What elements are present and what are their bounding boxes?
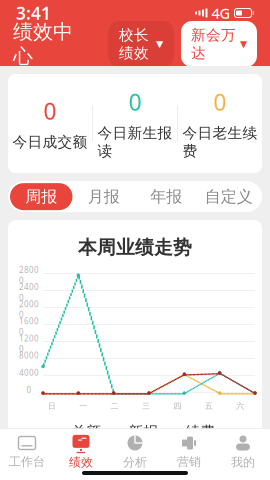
staticText: 今日新生报读 xyxy=(97,124,172,160)
staticText: 3:41 xyxy=(16,1,51,24)
staticText: ▼ xyxy=(240,39,247,49)
button[interactable]: 年报 xyxy=(135,183,197,210)
staticText: 8000 xyxy=(19,350,39,361)
button[interactable]: 月报 xyxy=(72,183,135,210)
staticText: 绩效 xyxy=(69,455,93,470)
staticText: 月报 xyxy=(88,187,120,206)
staticText: 总额 xyxy=(71,423,101,441)
staticText: 12000 xyxy=(19,333,39,354)
button[interactable]: 我的 xyxy=(216,435,270,470)
staticText: 24000 xyxy=(19,282,39,303)
staticText: 4G xyxy=(211,3,230,23)
staticText: 今日成交额 xyxy=(12,133,87,151)
staticText: 四 xyxy=(173,401,181,411)
staticText: 28000 xyxy=(19,264,39,286)
staticText: 我的 xyxy=(231,455,255,470)
staticText: 今日老生续费 xyxy=(182,124,257,160)
staticText: 本周业绩走势 xyxy=(78,236,192,259)
button[interactable]: 自定义 xyxy=(197,183,260,210)
button[interactable]: 工作台 xyxy=(0,435,54,469)
staticText: 年报 xyxy=(150,187,182,206)
staticText: 日 xyxy=(48,401,56,411)
button[interactable]: 营销 xyxy=(162,435,216,469)
button[interactable]: 周报 xyxy=(10,183,72,210)
staticText: 周报 xyxy=(25,187,57,206)
staticText: 0 xyxy=(213,87,226,117)
staticText: 分析 xyxy=(123,455,147,470)
staticText: 一 xyxy=(79,401,87,411)
staticText: 二 xyxy=(111,401,119,411)
staticText: 工作台 xyxy=(9,454,45,469)
staticText: 16000 xyxy=(19,316,39,337)
staticText: 0 xyxy=(128,87,141,117)
staticText: 营销 xyxy=(177,454,201,469)
staticText: 自定义 xyxy=(205,187,253,206)
staticText: 4000 xyxy=(19,367,39,378)
staticText: 0 xyxy=(43,96,56,126)
button[interactable]: 校长绩效 xyxy=(108,21,174,67)
staticText: 0 xyxy=(26,384,31,395)
staticText: 三 xyxy=(142,401,150,411)
staticText: 绩效中心 xyxy=(13,19,73,68)
button[interactable]: 分析 xyxy=(108,435,162,470)
staticText: ▼ xyxy=(156,39,163,49)
staticText: 新报 xyxy=(128,423,158,441)
staticText: 新会万达 xyxy=(191,26,236,62)
staticText: 五 xyxy=(205,401,213,411)
button[interactable]: 绩效 xyxy=(54,435,108,470)
staticText: 20000 xyxy=(19,299,39,320)
button[interactable]: 新会万达 xyxy=(181,21,257,67)
staticText: 校长绩效 xyxy=(119,26,149,62)
staticText: 六 xyxy=(236,401,244,411)
staticText: 续费 xyxy=(185,423,215,441)
